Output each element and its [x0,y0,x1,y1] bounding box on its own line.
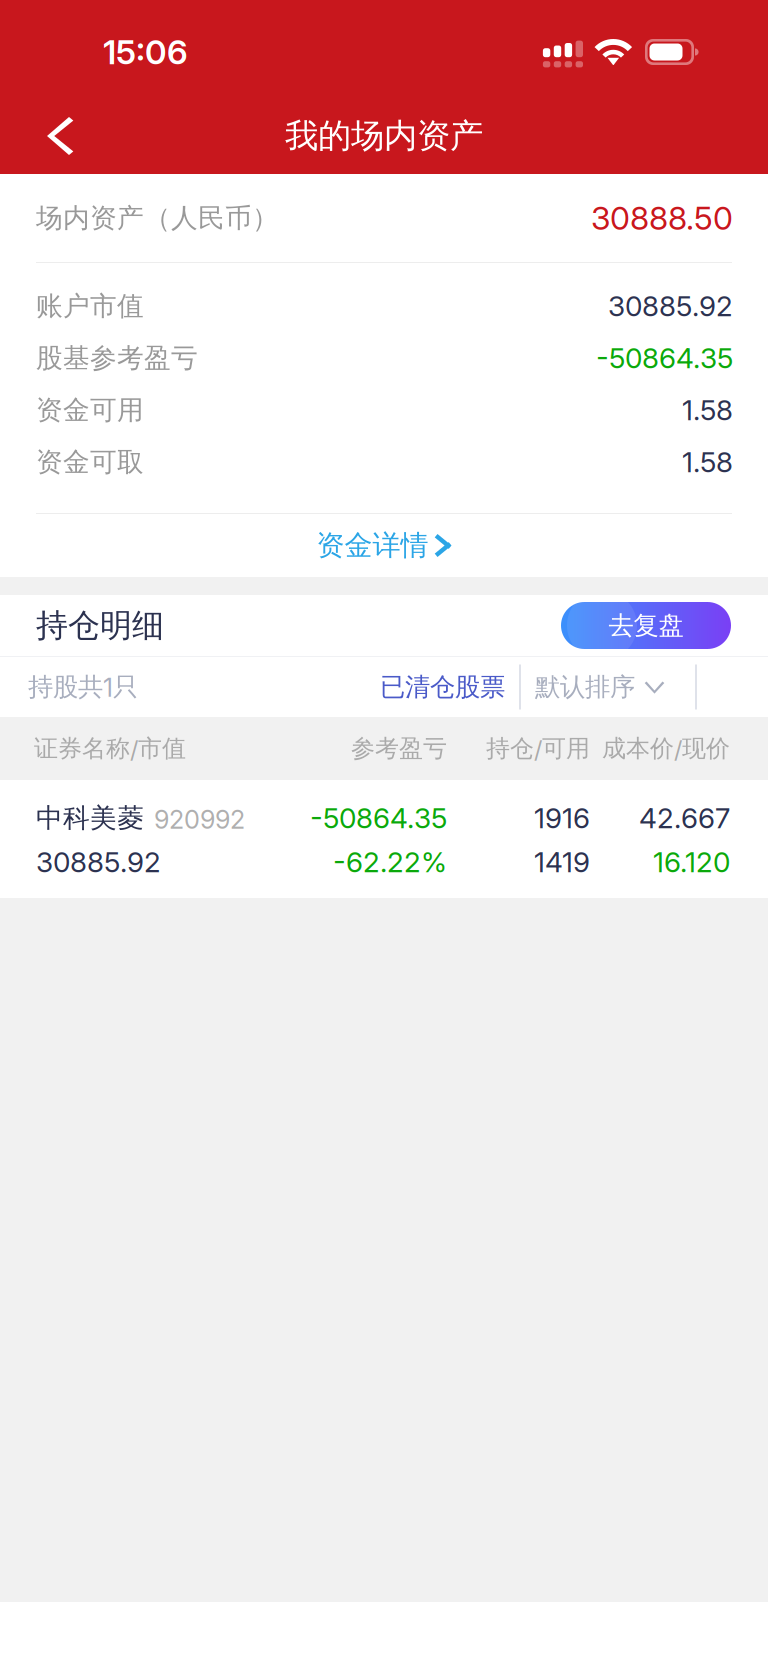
staticText: -50864.35 [596,341,733,375]
staticText: 30885.92 [608,289,733,323]
staticText: 持股共1只 [28,671,138,703]
staticText: 证券名称/市值 [34,733,186,764]
staticText: -50864.35 [310,801,447,835]
button[interactable]: 默认排序 [528,662,671,712]
staticText: 1.58 [682,393,733,427]
staticText: 资金可取 [36,445,144,479]
button[interactable]: 返回 [0,99,99,173]
staticText: 去复盘 [608,609,683,641]
staticText: 账户市值 [36,289,144,323]
button[interactable]: 资金详情 [0,514,768,577]
staticText: 16.120 [653,845,730,879]
staticText: 30885.92 [36,845,161,879]
staticText: 1916 [534,801,590,835]
staticText: 30888.50 [591,199,733,237]
staticText: 参考盈亏 [351,733,447,764]
staticText: 1.58 [682,445,733,479]
button[interactable]: 已清仓股票 [373,662,512,712]
button[interactable]: 中科美菱 [0,780,768,898]
staticText: 持仓明细 [36,605,164,646]
staticText: 持仓/可用 [486,733,590,764]
staticText: 1419 [534,845,590,879]
staticText: 中科美菱 [36,801,144,835]
staticText: 场内资产（人民币） [36,201,279,235]
staticText: 资金详情 [316,528,428,563]
staticText: 42.667 [639,801,730,835]
staticText: 股基参考盈亏 [36,341,198,375]
staticText: -62.22% [333,845,447,879]
staticText: 920992 [154,804,245,835]
staticText: 已清仓股票 [380,671,505,703]
button[interactable]: 去复盘 [561,602,731,649]
staticText: 成本价/现价 [602,733,730,764]
staticText: 资金可用 [36,393,144,427]
staticText: 15:06 [103,32,188,72]
staticText: 我的场内资产 [285,115,483,157]
staticText: 默认排序 [535,671,635,703]
